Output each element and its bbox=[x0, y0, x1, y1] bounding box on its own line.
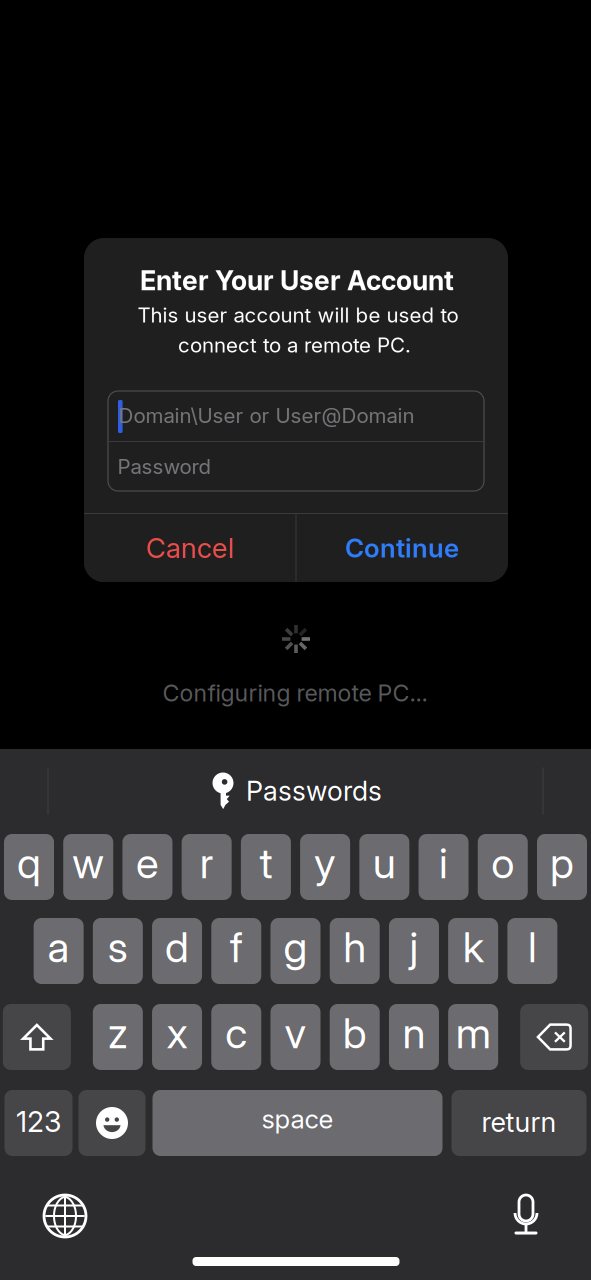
staticText: a bbox=[48, 922, 70, 972]
staticText: m bbox=[456, 1008, 491, 1058]
button[interactable]: p bbox=[537, 834, 587, 900]
button[interactable]: Delete bbox=[520, 1004, 588, 1070]
button[interactable]: s bbox=[93, 918, 143, 984]
button[interactable]: 123 bbox=[4, 1090, 72, 1156]
button[interactable]: l bbox=[507, 918, 557, 984]
staticText: return bbox=[481, 1105, 556, 1139]
staticText: Password bbox=[117, 454, 211, 479]
staticText: w bbox=[72, 838, 104, 888]
staticText: q bbox=[17, 838, 41, 888]
button[interactable]: Continue bbox=[296, 514, 508, 582]
staticText: p bbox=[550, 838, 574, 888]
staticText: b bbox=[343, 1008, 367, 1058]
staticText: x bbox=[167, 1008, 188, 1058]
staticText: Enter Your User Account bbox=[140, 264, 454, 297]
button[interactable]: g bbox=[270, 918, 320, 984]
staticText: z bbox=[108, 1008, 128, 1058]
staticText: Passwords bbox=[246, 775, 382, 807]
button[interactable]: o bbox=[478, 834, 528, 900]
button[interactable]: q bbox=[4, 834, 54, 900]
staticText: j bbox=[409, 922, 418, 972]
staticText: o bbox=[491, 838, 514, 888]
staticText: k bbox=[463, 922, 484, 972]
staticText: connect to a remote PC. bbox=[178, 333, 411, 357]
button[interactable]: Shift bbox=[3, 1004, 71, 1070]
button[interactable]: j bbox=[389, 918, 439, 984]
staticText: d bbox=[165, 922, 189, 972]
button[interactable]: b bbox=[330, 1004, 380, 1070]
button[interactable]: y bbox=[300, 834, 350, 900]
staticText: g bbox=[283, 922, 307, 972]
button[interactable]: Dictation bbox=[508, 1194, 544, 1238]
button[interactable]: d bbox=[152, 918, 202, 984]
button[interactable]: t bbox=[241, 834, 291, 900]
button[interactable]: z bbox=[93, 1004, 143, 1070]
staticText: i bbox=[439, 838, 448, 888]
staticText: r bbox=[200, 838, 214, 888]
staticText: e bbox=[136, 838, 159, 888]
button[interactable]: space bbox=[152, 1090, 442, 1156]
button[interactable]: i bbox=[419, 834, 469, 900]
staticText: y bbox=[314, 838, 336, 888]
button[interactable]: w bbox=[63, 834, 113, 900]
staticText: u bbox=[373, 838, 396, 888]
staticText: n bbox=[402, 1008, 425, 1058]
button[interactable]: c bbox=[211, 1004, 261, 1070]
button[interactable]: Emoji bbox=[78, 1090, 145, 1156]
button[interactable]: h bbox=[330, 918, 380, 984]
staticText: Cancel bbox=[146, 531, 234, 565]
staticText: f bbox=[230, 922, 243, 972]
button[interactable]: m bbox=[448, 1004, 498, 1070]
button[interactable]: x bbox=[152, 1004, 202, 1070]
staticText: 123 bbox=[16, 1104, 61, 1139]
button[interactable]: k bbox=[448, 918, 498, 984]
staticText: t bbox=[259, 838, 272, 888]
staticText: Continue bbox=[345, 532, 459, 564]
button[interactable]: n bbox=[389, 1004, 439, 1070]
button[interactable]: Next keyboard bbox=[44, 1195, 86, 1237]
staticText: Configuring remote PC... bbox=[162, 679, 427, 707]
staticText: c bbox=[225, 1008, 247, 1058]
button[interactable]: e bbox=[122, 834, 172, 900]
button[interactable]: f bbox=[211, 918, 261, 984]
button[interactable]: Passwords bbox=[212, 766, 382, 816]
button[interactable]: u bbox=[359, 834, 409, 900]
button[interactable]: Cancel bbox=[84, 514, 296, 582]
button[interactable]: a bbox=[34, 918, 84, 984]
staticText: v bbox=[284, 1008, 306, 1058]
staticText: l bbox=[528, 922, 537, 972]
staticText: s bbox=[108, 922, 128, 972]
staticText: space bbox=[261, 1103, 333, 1135]
button[interactable]: v bbox=[270, 1004, 320, 1070]
button[interactable]: return bbox=[451, 1090, 586, 1156]
staticText: This user account will be used to bbox=[137, 303, 458, 327]
staticText: h bbox=[343, 922, 366, 972]
staticText: Domain\User or User@Domain bbox=[118, 403, 414, 428]
button[interactable]: r bbox=[182, 834, 232, 900]
